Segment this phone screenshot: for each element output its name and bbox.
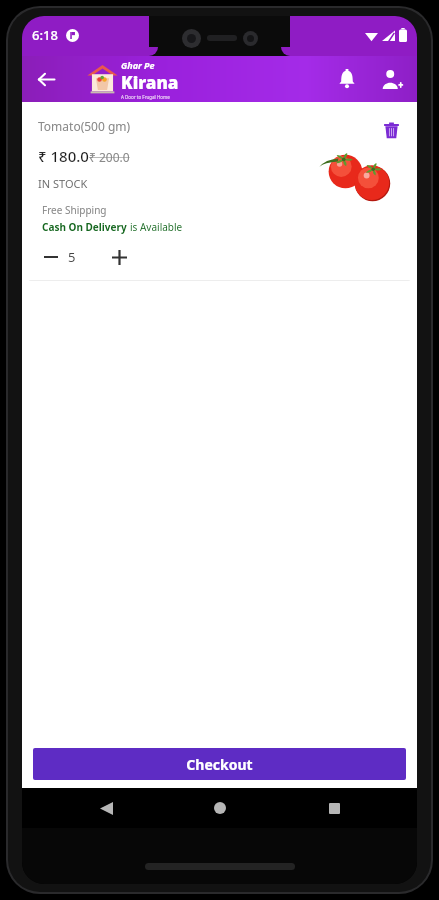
staticText: Checkout: [186, 755, 253, 774]
staticText: Tomato(500 gm): [38, 118, 131, 134]
staticText: ₹ 200.0: [89, 149, 130, 165]
button[interactable]: Recent apps: [316, 790, 352, 826]
button[interactable]: Home: [202, 790, 238, 826]
staticText: IN STOCK: [38, 176, 88, 191]
staticText: 5: [68, 248, 76, 266]
staticText: ₹ 180.0: [38, 146, 89, 166]
staticText: A Door to Frugal Home: [121, 94, 170, 100]
button[interactable]: Checkout: [33, 748, 406, 780]
staticText: Ghar Pe: [121, 59, 155, 71]
button[interactable]: Back: [88, 790, 124, 826]
button[interactable]: Tomato(500 gm): [28, 108, 411, 281]
staticText: is Available: [130, 220, 183, 234]
button[interactable]: Back: [26, 59, 66, 99]
button[interactable]: Notifications: [327, 59, 367, 99]
staticText: Cash On Delivery: [42, 220, 130, 234]
staticText: Kirana: [121, 71, 179, 94]
button[interactable]: Delete item: [375, 114, 407, 146]
button[interactable]: Increase quantity: [102, 240, 136, 274]
button[interactable]: Account: [371, 59, 411, 99]
button[interactable]: Decrease quantity: [34, 240, 68, 274]
staticText: 6:18: [32, 26, 58, 44]
staticText: Free Shipping: [42, 203, 107, 217]
